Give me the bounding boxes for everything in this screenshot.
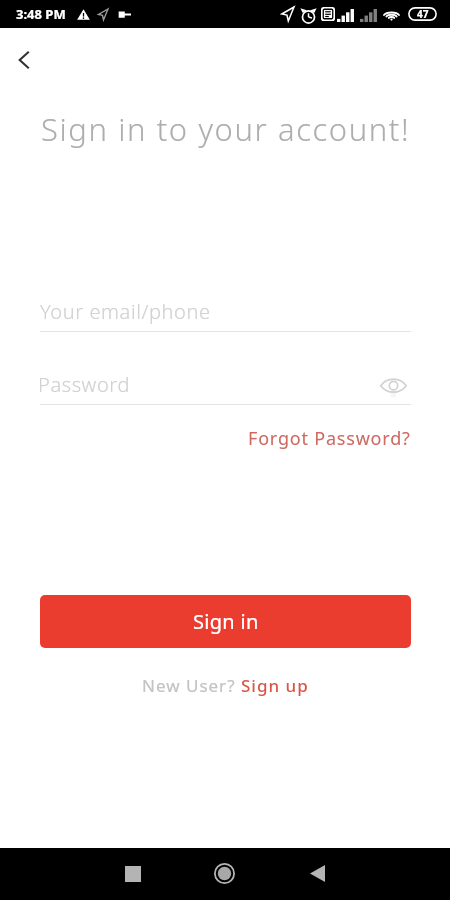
staticText: Sign up — [241, 674, 309, 697]
staticText: Your email/phone — [40, 298, 211, 325]
button[interactable]: Sign in — [40, 595, 411, 648]
staticText: 3:48 PM — [16, 5, 66, 23]
button[interactable]: Forgot Password? — [240, 420, 419, 457]
staticText: Sign in to your account! — [41, 108, 411, 150]
staticText: Password — [38, 371, 130, 398]
button[interactable]: Back — [2, 38, 46, 82]
staticText: 47 — [417, 7, 429, 21]
button[interactable]: Recents — [110, 851, 155, 896]
button[interactable]: Back — [295, 851, 340, 896]
staticText: New User? — [142, 674, 241, 697]
staticText: Sign in — [193, 608, 259, 635]
button[interactable]: Sign up — [241, 674, 309, 697]
button[interactable]: Show password — [377, 370, 409, 402]
button[interactable]: Home — [202, 851, 247, 896]
staticText: Forgot Password? — [248, 426, 411, 451]
